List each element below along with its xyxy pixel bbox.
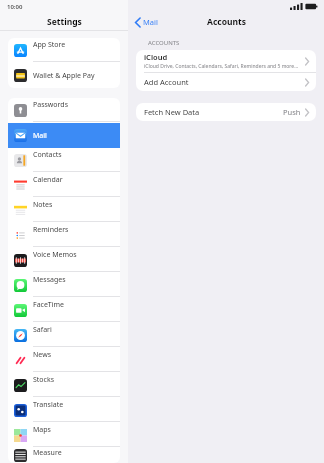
staticText: Translate [33,400,64,410]
staticText: Messages [33,275,66,285]
button[interactable]: Calendar [8,173,120,198]
staticText: ACCOUNTS [148,39,180,47]
staticText: Contacts [33,150,62,160]
button[interactable]: Translate [8,398,120,423]
staticText: iCloud Drive, Contacts, Calendars, Safar… [144,63,299,70]
button[interactable]: Voice Memos [8,248,120,273]
button[interactable]: Stocks [8,373,120,398]
staticText: Mail [143,17,158,27]
staticText: Mail [33,131,47,141]
button[interactable]: Add Account [136,73,316,91]
button[interactable]: Reminders [8,223,120,248]
staticText: FaceTime [33,300,65,310]
staticText: App Store [33,40,66,50]
button[interactable]: Mail [133,15,160,29]
button[interactable]: FaceTime [8,298,120,323]
button[interactable]: Measure [8,448,120,463]
staticText: Calendar [33,175,63,185]
staticText: 10:00 [7,3,23,11]
staticText: Stocks [33,375,55,385]
staticText: Passwords [33,100,69,110]
button[interactable]: Maps [8,423,120,448]
button[interactable]: Notes [8,198,120,223]
staticText: Accounts [207,16,246,28]
staticText: Measure [33,448,62,458]
staticText: Settings [47,16,82,28]
button[interactable]: Wallet & Apple Pay [8,63,120,88]
staticText: iCloud [144,52,168,62]
staticText: Reminders [33,225,69,235]
button[interactable]: Contacts [8,148,120,173]
staticText: Push [283,107,301,117]
button[interactable]: Safari [8,323,120,348]
staticText: Wallet & Apple Pay [33,71,95,81]
button[interactable]: Messages [8,273,120,298]
button[interactable]: iCloud [136,50,316,72]
button[interactable]: News [8,348,120,373]
button[interactable]: Mail [8,123,120,148]
staticText: Add Account [144,77,305,87]
staticText: News [33,350,51,360]
staticText: Fetch New Data [144,107,283,117]
staticText: Notes [33,200,53,210]
staticText: Maps [33,425,51,435]
staticText: Safari [33,325,52,335]
button[interactable]: App Store [8,38,120,63]
staticText: Voice Memos [33,250,77,260]
button[interactable]: Fetch New Data [136,103,316,121]
button[interactable]: Passwords [8,98,120,123]
